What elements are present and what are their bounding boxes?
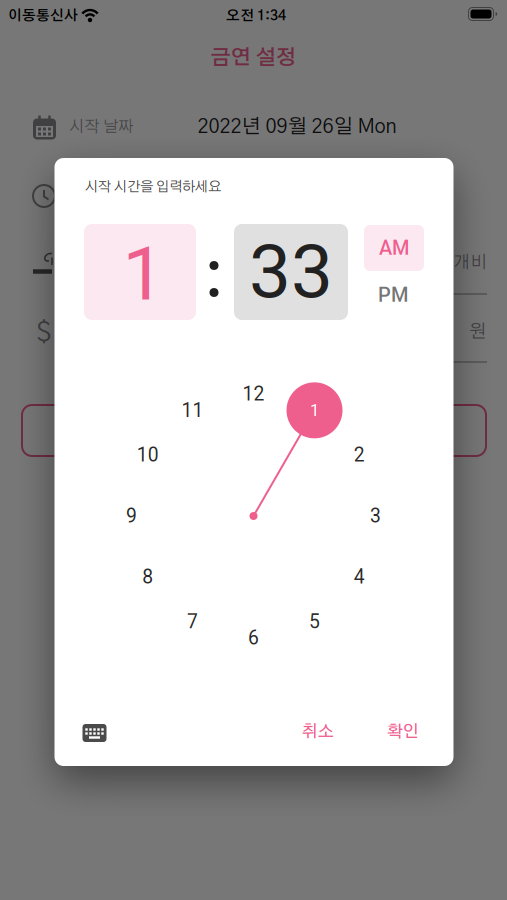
staticText: $ xyxy=(36,319,52,347)
staticText: 10 xyxy=(137,444,159,466)
button[interactable]: 저장 xyxy=(22,405,486,456)
staticText: 9 xyxy=(126,505,137,527)
staticText: 시작 날짜 xyxy=(69,119,133,135)
button[interactable]: 취소 xyxy=(293,718,341,746)
button[interactable]: 1시 xyxy=(286,382,342,438)
staticText: 1 xyxy=(122,230,164,318)
staticText: 오전 1:34 xyxy=(226,9,286,23)
staticText: 2 xyxy=(354,444,365,466)
staticText: 8 xyxy=(142,566,153,588)
staticText: 확인 xyxy=(386,724,418,740)
staticText: 취소 xyxy=(301,724,333,740)
button[interactable]: AM xyxy=(364,225,424,271)
staticText: PM xyxy=(378,283,408,307)
staticText: 2022년 09월 26일 Mon xyxy=(197,117,396,137)
staticText: 12 xyxy=(242,383,264,405)
staticText: 금연 설정 xyxy=(210,48,295,68)
staticText: 개비 xyxy=(453,254,487,271)
staticText: 5 xyxy=(309,610,320,633)
button[interactable]: 키보드 입력으로 전환 xyxy=(82,724,106,742)
button[interactable]: PM xyxy=(363,275,423,315)
staticText: 시작 시간을 입력하세요 xyxy=(85,180,221,194)
staticText: 4 xyxy=(354,566,365,588)
button[interactable]: 확인 xyxy=(378,718,426,746)
staticText: 7 xyxy=(187,610,198,633)
staticText: 1 xyxy=(310,401,319,420)
button[interactable]: 분 선택 xyxy=(234,224,348,320)
staticText: 이동통신사 xyxy=(8,9,78,23)
staticText: 33 xyxy=(249,228,333,316)
staticText: 3 xyxy=(370,505,381,527)
button[interactable]: 시 선택 xyxy=(84,224,196,320)
staticText: AM xyxy=(379,236,409,260)
staticText: 11 xyxy=(181,399,203,422)
staticText: 6 xyxy=(248,627,259,649)
staticText: 원 xyxy=(468,323,486,341)
